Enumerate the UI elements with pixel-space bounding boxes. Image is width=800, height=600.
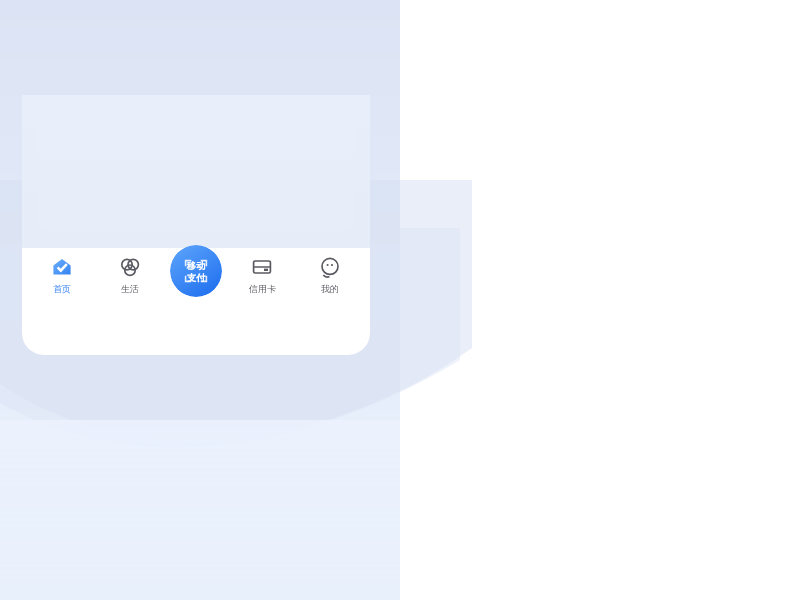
button[interactable]: 信用卡 xyxy=(234,252,290,298)
button[interactable]: 首页 xyxy=(34,252,90,298)
staticText: 生活 xyxy=(121,283,139,294)
staticText: 信用卡 xyxy=(249,283,276,294)
staticText: 支付 xyxy=(187,272,205,283)
button[interactable]: 我的 xyxy=(302,252,358,298)
staticText: 首页 xyxy=(53,283,71,294)
staticText: 我的 xyxy=(321,283,339,294)
button[interactable]: 移动支付 xyxy=(170,245,222,297)
staticText: 移动 xyxy=(187,260,205,271)
button[interactable]: 生活 xyxy=(102,252,158,298)
